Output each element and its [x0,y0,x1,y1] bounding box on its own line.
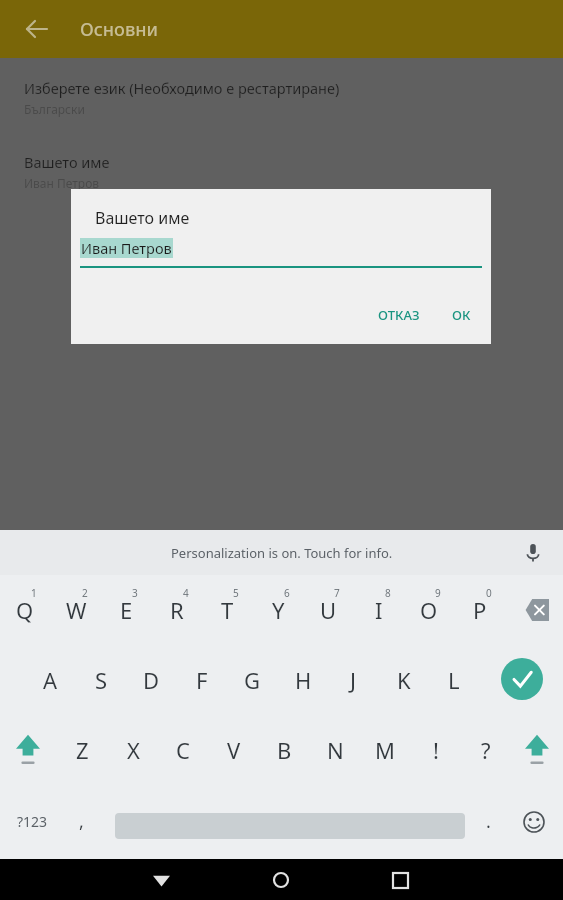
staticText: 6 [284,586,290,600]
staticText: Иван Петров [24,175,100,191]
button[interactable]: G [228,645,276,715]
staticText: 4 [183,586,189,600]
button[interactable]: F [178,645,226,715]
button[interactable]: Y [254,575,302,645]
staticText: ! [433,735,439,765]
staticText: L [448,665,460,695]
staticText: X [127,735,140,765]
button[interactable]: Backspace [511,588,557,632]
button[interactable]: J [329,645,377,715]
staticText: 1 [31,586,37,600]
button[interactable]: Home [261,860,301,900]
button[interactable]: L [430,645,478,715]
staticText: 8 [385,586,391,600]
button[interactable]: O [405,575,453,645]
staticText: Вашето име [95,207,190,229]
button[interactable]: Z [58,715,106,785]
button[interactable]: ?123 [4,797,60,845]
button[interactable]: ОК [444,300,479,330]
button[interactable]: D [127,645,175,715]
staticText: W [66,595,87,625]
staticText: U [320,595,337,625]
staticText: F [196,665,208,695]
button[interactable]: C [159,715,207,785]
button[interactable]: Recents [380,860,420,900]
button[interactable]: Изберете език (Необходимо е рестартиране… [0,76,563,119]
staticText: ?123 [17,812,48,831]
staticText: G [244,665,261,695]
button[interactable]: . [467,797,509,845]
staticText: M [375,735,395,765]
staticText: Основни [80,17,158,42]
button[interactable]: U [304,575,352,645]
button[interactable]: A [26,645,74,715]
staticText: Y [272,595,285,625]
button[interactable]: M [361,715,409,785]
button[interactable]: Enter [500,657,544,701]
button[interactable]: Back [141,860,181,900]
staticText: , [79,809,84,834]
staticText: T [221,595,234,625]
button[interactable]: E [102,575,150,645]
staticText: E [120,595,133,625]
button[interactable]: Q [1,575,49,645]
staticText: P [473,595,487,625]
staticText: Изберете език (Необходимо е рестартиране… [24,78,340,98]
staticText: 3 [132,586,138,600]
staticText: S [95,665,108,695]
button[interactable]: Shift [4,715,52,785]
staticText: ? [481,735,491,765]
staticText: 2 [82,586,88,600]
button[interactable]: Вашето име [0,150,563,193]
button[interactable]: X [109,715,157,785]
button[interactable]: T [203,575,251,645]
staticText: R [170,595,184,625]
staticText: D [143,665,160,695]
staticText: Вашето име [24,152,110,172]
staticText: K [397,665,411,695]
staticText: Q [16,595,34,625]
button[interactable]: B [260,715,308,785]
button[interactable]: Back [16,9,56,49]
staticText: N [327,735,344,765]
staticText: C [176,735,190,765]
staticText: I [375,595,383,625]
staticText: V [227,735,241,765]
button[interactable]: R [153,575,201,645]
button[interactable]: W [52,575,100,645]
button[interactable]: K [380,645,428,715]
staticText: 5 [233,586,239,600]
staticText: 0 [486,586,492,600]
button[interactable]: Voice input [515,535,551,571]
staticText: B [277,735,292,765]
button[interactable]: ! [412,715,460,785]
staticText: ОТКАЗ [378,306,420,324]
button[interactable]: P [456,575,504,645]
button[interactable]: ОТКАЗ [370,300,428,330]
staticText: O [420,595,438,625]
staticText: . [486,809,491,834]
button[interactable]: Shift [513,715,561,785]
staticText: J [350,665,357,695]
staticText: Български [24,101,85,117]
staticText: A [43,665,58,695]
staticText: 9 [435,586,441,600]
button[interactable]: H [279,645,327,715]
staticText: ОК [452,306,471,324]
staticText: 7 [334,586,340,600]
staticText: Иван Петров [81,238,172,258]
button[interactable]: Emoji [514,802,554,842]
button[interactable]: I [355,575,403,645]
staticText: Z [76,735,89,765]
staticText: H [295,665,312,695]
staticText: Personalization is on. Touch for info. [171,544,393,562]
button[interactable]: V [210,715,258,785]
button[interactable]: , [58,797,104,845]
button[interactable]: N [311,715,359,785]
button[interactable]: S [77,645,125,715]
button[interactable]: ? [462,715,510,785]
